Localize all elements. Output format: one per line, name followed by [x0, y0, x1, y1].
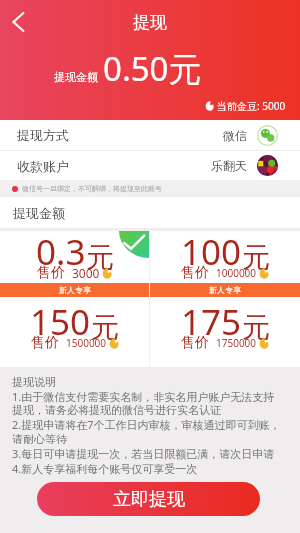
button[interactable]: 175 [150, 297, 300, 367]
button[interactable]: 提现方式 [0, 120, 300, 150]
staticText: 新人专享 [59, 285, 91, 295]
staticText: 提现说明 [12, 375, 56, 389]
staticText: 提现金额 [13, 205, 65, 221]
staticText: 提现金额 [54, 70, 98, 84]
staticText: 立即提现 [113, 488, 185, 511]
staticText: 新人专享 [209, 285, 241, 295]
staticText: 元 [242, 240, 270, 275]
staticText: 1000000 [216, 266, 257, 280]
button[interactable]: 150 [0, 297, 149, 367]
button[interactable]: 0.3 [0, 231, 149, 297]
staticText: 售价 [37, 264, 65, 282]
button[interactable]: 立即提现 [37, 482, 260, 516]
staticText: 乐翻天 [211, 158, 247, 173]
staticText: 150 [30, 298, 91, 346]
staticText: 售价 [31, 334, 59, 352]
staticText: 1500000 [66, 336, 107, 350]
button[interactable]: 收款账户 [0, 151, 300, 180]
staticText: 3000 [72, 265, 100, 281]
staticText: 提现 [133, 12, 167, 33]
staticText: 元 [242, 310, 270, 345]
staticText: 175 [181, 298, 242, 346]
staticText: 1750000 [216, 336, 257, 350]
staticText: 元 [91, 310, 119, 345]
staticText: 当前金豆: 5000 [217, 99, 286, 113]
staticText: 微信 [223, 128, 247, 143]
staticText: 0.50元 [103, 46, 202, 91]
staticText: 提现方式 [17, 127, 69, 143]
staticText: 收款账户 [17, 158, 69, 174]
staticText: 售价 [181, 264, 209, 282]
button[interactable]: Back [2, 6, 34, 38]
staticText: 元 [86, 240, 114, 275]
staticText: 1.由于微信支付需要实名制，非实名用户账户无法支持 提现，请务必将提现的微信号进… [12, 389, 281, 476]
staticText: 0.3 [36, 228, 86, 276]
staticText: 100 [181, 228, 242, 276]
staticText: 微信号一旦绑定，不可解绑，将提现至此账号 [22, 184, 162, 193]
button[interactable]: 100 [150, 231, 300, 297]
staticText: 售价 [181, 334, 209, 352]
